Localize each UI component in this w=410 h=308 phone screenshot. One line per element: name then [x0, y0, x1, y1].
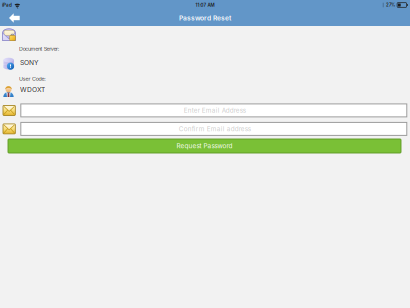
staticText: iPad [2, 2, 12, 8]
staticText: Document Server: [19, 45, 60, 52]
staticText: Request Password [176, 142, 232, 150]
staticText: Confirm Email address [179, 125, 251, 133]
staticText: WDOXT [20, 85, 45, 94]
staticText: User Code: [19, 75, 46, 82]
staticText: SONY [20, 58, 39, 67]
staticText: Enter Email Address [184, 106, 246, 114]
button[interactable]: Back [5, 10, 24, 26]
staticText: 11:07 AM [195, 2, 214, 8]
staticText: 27% [386, 2, 395, 8]
button[interactable]: Request Password [8, 139, 401, 153]
staticText: Password Reset [179, 14, 231, 22]
